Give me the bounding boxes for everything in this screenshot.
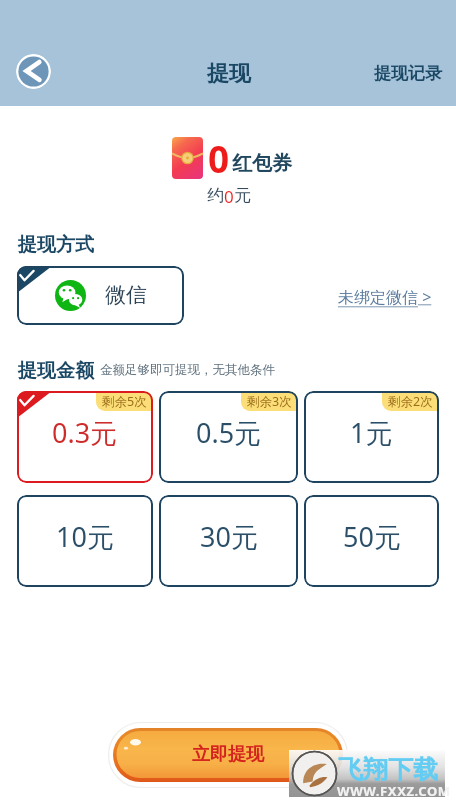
button[interactable]: 立即提现 — [104, 718, 352, 792]
button[interactable]: 剩余5次 — [17, 391, 153, 483]
button[interactable]: 提现记录 — [374, 63, 442, 84]
button[interactable]: 未绑定微信 > — [338, 286, 432, 308]
staticText: 0 — [208, 133, 230, 183]
staticText: 0 — [224, 185, 234, 208]
button[interactable]: Back — [16, 54, 51, 89]
button[interactable]: 10元 — [17, 495, 153, 587]
staticText: 10元 — [56, 518, 114, 555]
staticText: 0.3元 — [52, 414, 118, 451]
staticText: 元 — [234, 185, 251, 206]
staticText: 提现方式 — [18, 233, 94, 257]
button[interactable]: 50元 — [304, 495, 439, 587]
staticText: 提现金额 — [18, 359, 94, 383]
staticText: 立即提现 — [192, 743, 264, 766]
staticText: 飞翔下载 — [338, 754, 438, 785]
staticText: 约 — [207, 185, 224, 206]
staticText: 0.5元 — [196, 414, 262, 451]
staticText: 红包券 — [232, 151, 292, 176]
button[interactable]: 30元 — [159, 495, 298, 587]
staticText: 剩余5次 — [102, 393, 147, 410]
button[interactable]: 剩余3次 — [159, 391, 298, 483]
button[interactable]: 微信 — [17, 266, 184, 325]
staticText: 1元 — [350, 414, 393, 451]
staticText: 金额足够即可提现，无其他条件 — [100, 362, 275, 378]
staticText: 微信 — [105, 282, 147, 308]
button[interactable]: 剩余2次 — [304, 391, 439, 483]
staticText: 提现 — [207, 60, 251, 88]
staticText: 剩余2次 — [388, 393, 433, 410]
staticText: WWW.FXXZ.COM — [337, 782, 451, 800]
staticText: 剩余3次 — [247, 393, 292, 410]
staticText: 30元 — [200, 518, 258, 555]
staticText: 50元 — [343, 518, 401, 555]
